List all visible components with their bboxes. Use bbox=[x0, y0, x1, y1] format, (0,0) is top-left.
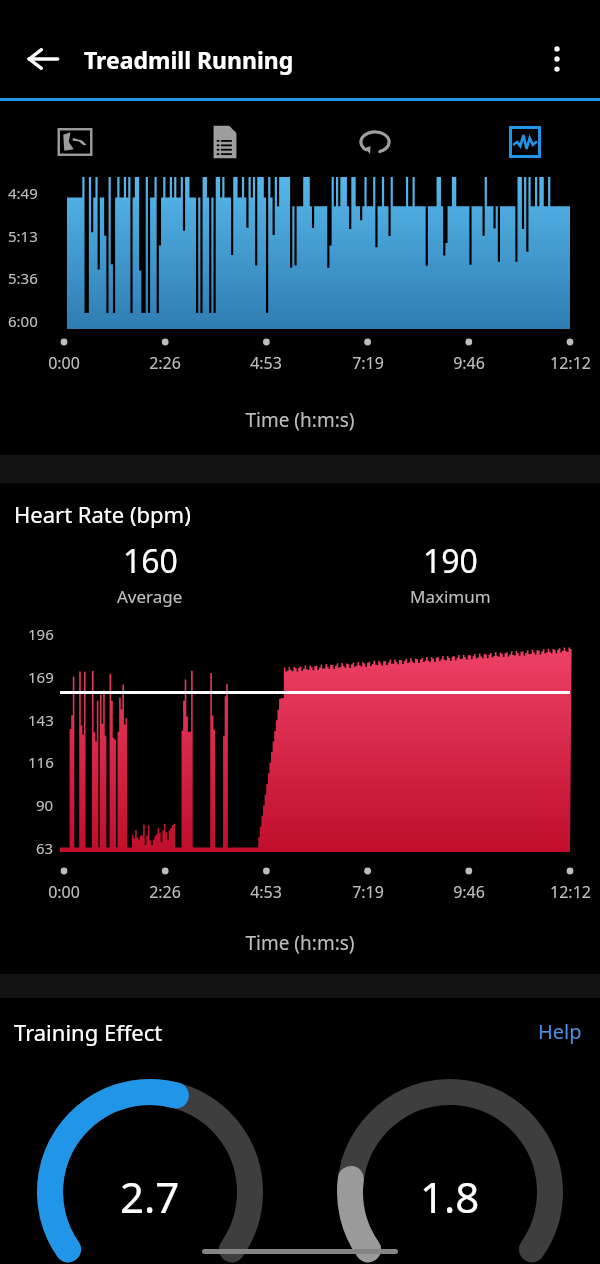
button[interactable]: Laps bbox=[300, 101, 450, 183]
staticText: 7:19 bbox=[352, 352, 384, 374]
staticText: 12:12 bbox=[550, 352, 591, 374]
staticText: 190 bbox=[423, 539, 478, 583]
staticText: Time (h:m:s) bbox=[0, 407, 600, 433]
staticText: 169 bbox=[28, 667, 54, 687]
staticText: 4:49 bbox=[8, 183, 38, 203]
staticText: Average bbox=[117, 585, 183, 608]
staticText: 63 bbox=[36, 838, 54, 858]
staticText: 5:36 bbox=[8, 268, 38, 288]
staticText: 0:00 bbox=[48, 881, 80, 903]
button[interactable]: Details bbox=[150, 101, 300, 183]
staticText: 4:53 bbox=[250, 352, 282, 374]
staticText: Training Effect bbox=[14, 1017, 163, 1047]
staticText: 2:26 bbox=[149, 352, 181, 374]
staticText: Time (h:m:s) bbox=[0, 930, 600, 956]
staticText: 2:26 bbox=[149, 881, 181, 903]
staticText: 7:19 bbox=[352, 881, 384, 903]
staticText: 116 bbox=[28, 752, 54, 772]
staticText: Heart Rate (bpm) bbox=[14, 499, 191, 529]
staticText: 4:53 bbox=[250, 881, 282, 903]
button[interactable]: Map bbox=[0, 101, 150, 183]
staticText: 2.7 bbox=[120, 1168, 180, 1225]
button[interactable]: More options bbox=[526, 28, 588, 90]
staticText: Treadmill Running bbox=[84, 44, 294, 75]
staticText: Maximum bbox=[410, 585, 491, 608]
staticText: 143 bbox=[28, 710, 54, 730]
button[interactable]: Help bbox=[534, 1014, 586, 1049]
staticText: 12:12 bbox=[550, 881, 591, 903]
staticText: 0:00 bbox=[48, 352, 80, 374]
staticText: 5:13 bbox=[8, 226, 38, 246]
button[interactable]: Back bbox=[12, 28, 74, 90]
staticText: 9:46 bbox=[453, 881, 485, 903]
staticText: 1.8 bbox=[420, 1168, 480, 1225]
staticText: 160 bbox=[123, 539, 178, 583]
staticText: 9:46 bbox=[453, 352, 485, 374]
staticText: Help bbox=[538, 1018, 582, 1045]
staticText: 6:00 bbox=[8, 311, 38, 331]
staticText: 196 bbox=[28, 624, 54, 644]
button[interactable]: Charts bbox=[450, 101, 600, 183]
staticText: 90 bbox=[36, 795, 54, 815]
